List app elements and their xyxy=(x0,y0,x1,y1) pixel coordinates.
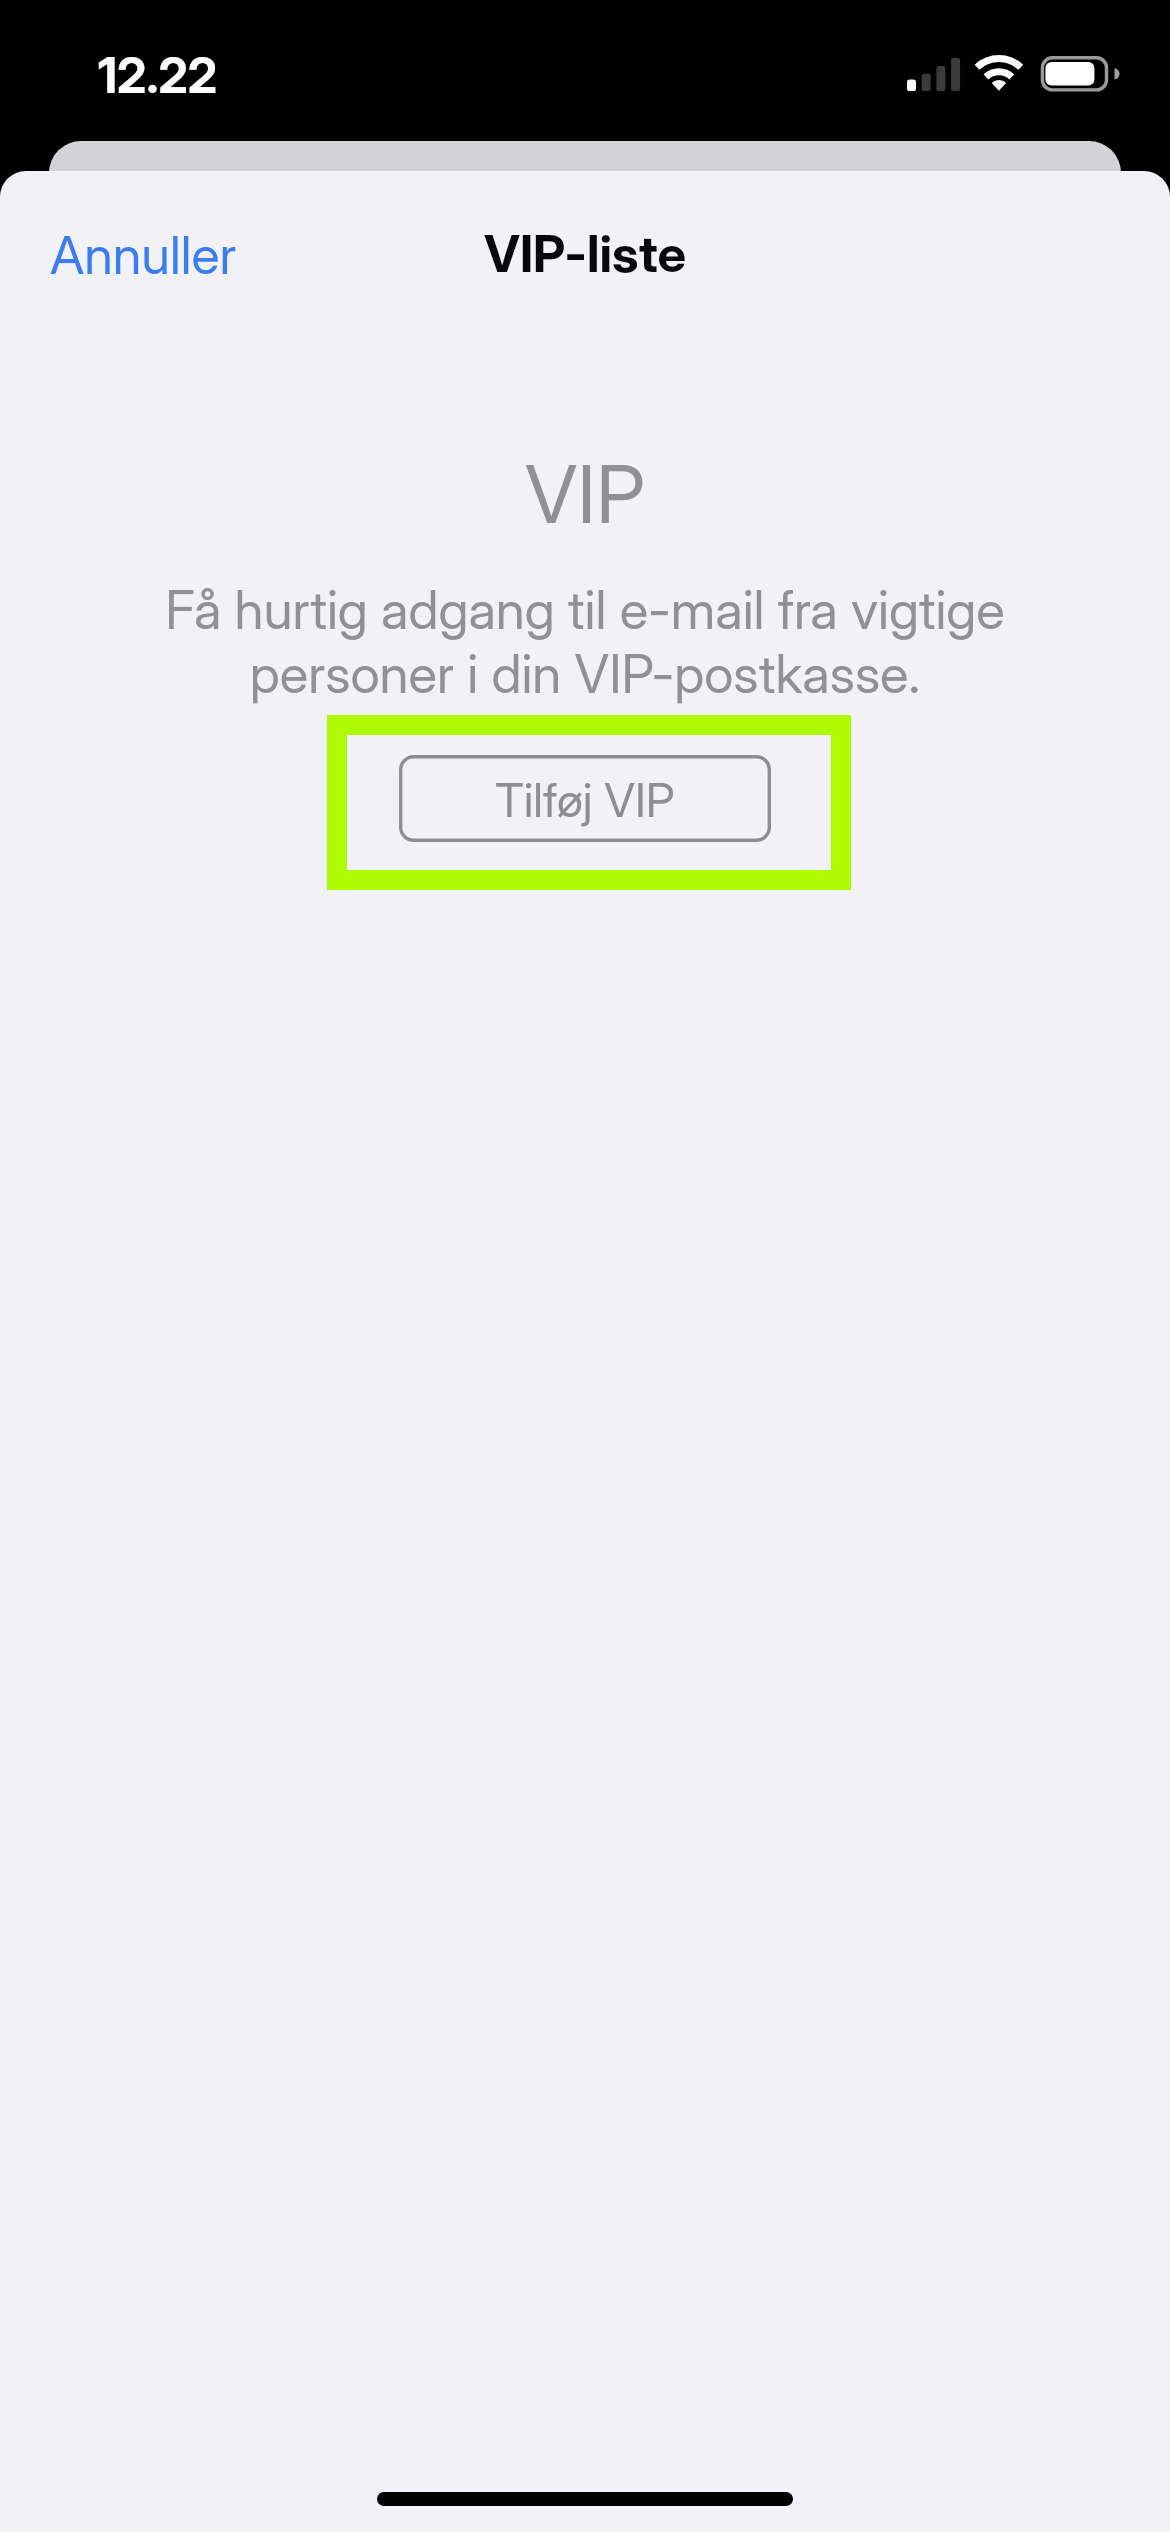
staticText: Annuller xyxy=(50,223,237,286)
staticText: 12.22 xyxy=(98,46,218,105)
staticText: Få hurtig adgang til e-mail fra vigtige … xyxy=(0,578,1170,706)
other: Cellular signal, Wi-Fi, battery xyxy=(0,0,1170,140)
button[interactable]: Annuller xyxy=(20,193,267,316)
staticText: VIP xyxy=(0,445,1170,542)
other: Home indicator xyxy=(377,2492,793,2506)
staticText: VIP-liste xyxy=(0,223,1170,285)
staticText: Tilføj VIP xyxy=(495,771,675,828)
button[interactable]: Tilføj VIP xyxy=(399,755,771,842)
